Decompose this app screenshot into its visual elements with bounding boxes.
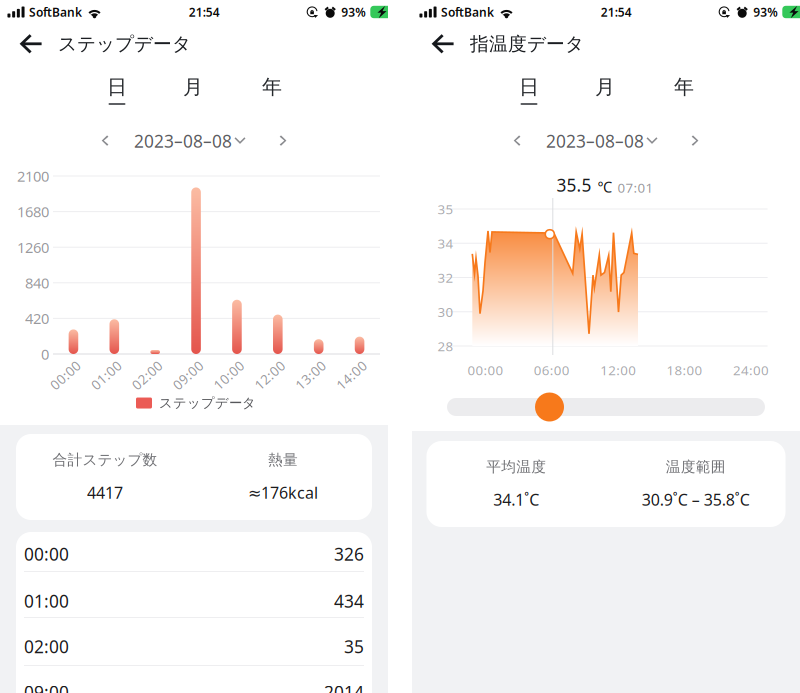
staticText: 07:01: [617, 179, 653, 196]
staticText: 14:00: [334, 366, 370, 384]
staticText: ≈176kcal: [248, 482, 318, 503]
staticText: 00:00: [47, 366, 83, 384]
button[interactable]: 2023–08–08: [546, 123, 658, 158]
staticText: 24:00: [733, 361, 769, 379]
staticText: 32: [437, 269, 453, 286]
staticText: 35.5: [556, 173, 591, 196]
button[interactable]: 09:00: [16, 666, 372, 693]
button[interactable]: 年: [235, 74, 309, 116]
staticText: 326: [334, 542, 364, 565]
staticText: 0: [41, 344, 49, 364]
staticText: 30.9˚C – 35.8˚C: [642, 489, 750, 510]
staticText: 02:00: [24, 635, 69, 658]
staticText: 2100: [17, 166, 49, 186]
staticText: ℃: [597, 177, 612, 196]
staticText: 420: [25, 309, 49, 328]
button[interactable]: 00:00: [16, 532, 372, 572]
button[interactable]: 02:00: [16, 618, 372, 666]
staticText: 2023–08–08: [546, 129, 644, 152]
staticText: 12:00: [600, 361, 636, 379]
staticText: 34.1˚C: [493, 489, 539, 510]
staticText: ステップデータ: [58, 32, 191, 55]
staticText: 熱量: [268, 451, 298, 469]
button[interactable]: 日: [492, 74, 566, 116]
staticText: 93%: [753, 4, 778, 20]
staticText: 月: [595, 75, 615, 99]
staticText: 指温度データ: [470, 32, 584, 55]
button[interactable]: 2023–08–08: [134, 123, 246, 158]
staticText: SoftBank: [29, 4, 82, 20]
button[interactable]: 月: [568, 74, 642, 116]
staticText: 月: [183, 75, 203, 99]
staticText: 13:00: [293, 366, 329, 384]
staticText: 01:00: [24, 589, 69, 612]
staticText: 合計ステップ数: [52, 451, 157, 469]
button[interactable]: 月: [156, 74, 230, 116]
staticText: SoftBank: [441, 4, 494, 20]
staticText: 1680: [17, 202, 49, 221]
button[interactable]: Back: [412, 24, 470, 64]
button[interactable]: 年: [647, 74, 721, 116]
staticText: 00:00: [24, 542, 69, 565]
staticText: 28: [437, 337, 453, 355]
staticText: 年: [262, 75, 282, 99]
staticText: 35: [344, 635, 364, 658]
staticText: 06:00: [534, 361, 570, 379]
staticText: 日: [519, 75, 539, 99]
staticText: 1260: [17, 237, 49, 257]
staticText: 30: [437, 303, 453, 321]
staticText: 35: [437, 200, 453, 218]
button[interactable]: Next day: [681, 126, 708, 156]
staticText: 21:54: [189, 4, 220, 20]
button[interactable]: Next day: [269, 126, 296, 156]
staticText: 34: [437, 234, 453, 252]
staticText: 02:00: [129, 366, 165, 384]
staticText: 4417: [87, 482, 123, 503]
button[interactable]: Back: [0, 24, 58, 64]
staticText: 平均温度: [486, 458, 546, 476]
staticText: 温度範囲: [666, 458, 726, 476]
staticText: 年: [674, 75, 694, 99]
staticText: 日: [107, 75, 127, 99]
staticText: 09:00: [24, 680, 69, 693]
staticText: 09:00: [170, 366, 206, 384]
staticText: 10:00: [211, 366, 247, 384]
staticText: 18:00: [667, 361, 703, 379]
button[interactable]: Previous day: [91, 126, 118, 156]
staticText: 01:00: [88, 366, 124, 384]
staticText: 00:00: [467, 361, 503, 379]
staticText: 2014: [324, 680, 364, 693]
staticText: 21:54: [601, 4, 632, 20]
staticText: 434: [334, 589, 364, 612]
button[interactable]: Previous day: [503, 126, 530, 156]
staticText: 2023–08–08: [134, 129, 232, 152]
staticText: 12:00: [252, 366, 288, 384]
staticText: 840: [25, 273, 49, 293]
staticText: ステップデータ: [159, 395, 256, 411]
staticText: 93%: [341, 4, 366, 20]
button[interactable]: 01:00: [16, 572, 372, 618]
button[interactable]: 日: [80, 74, 154, 116]
